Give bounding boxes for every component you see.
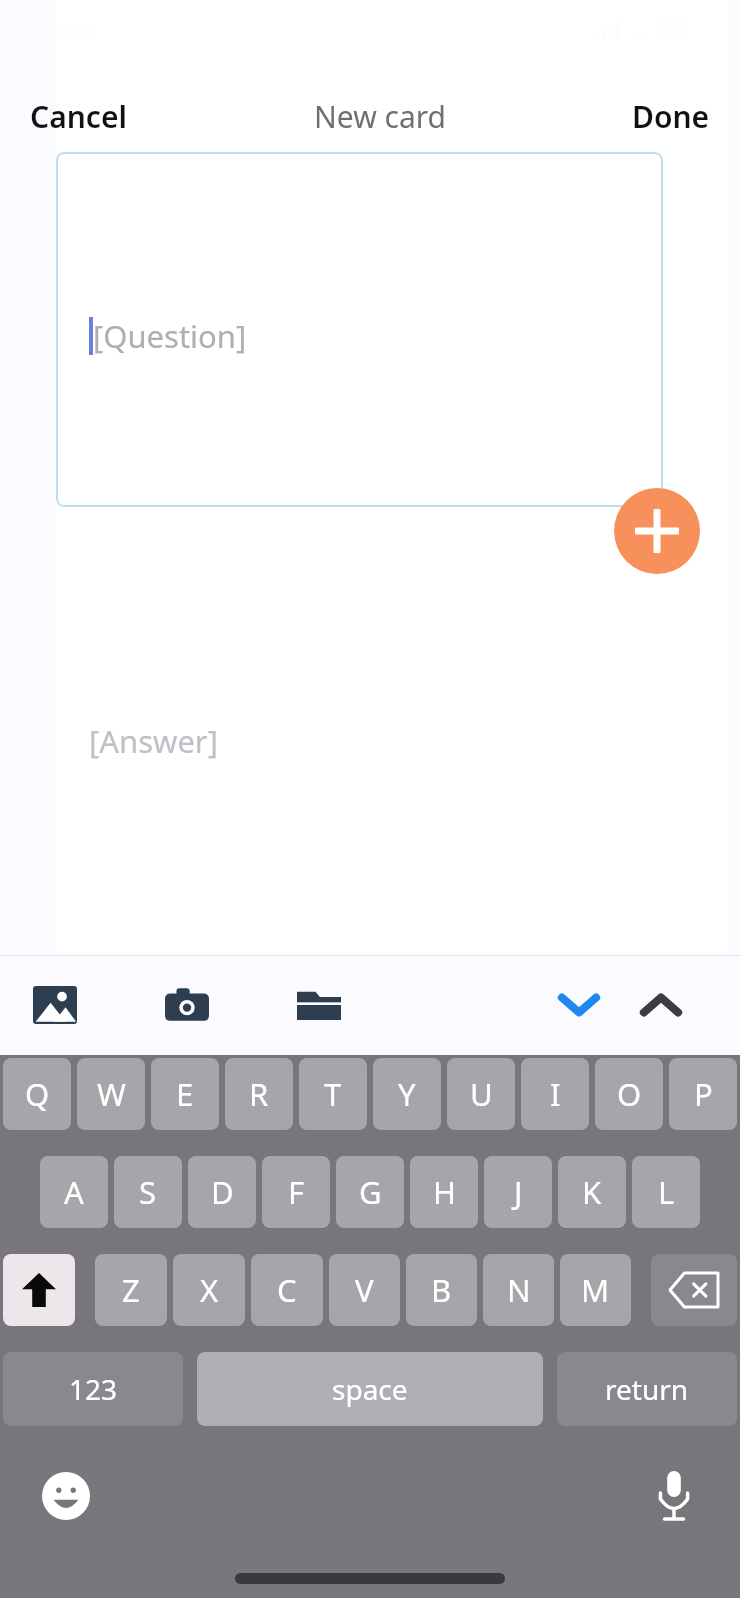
staticText: G [359, 1171, 382, 1213]
button[interactable]: 123 [3, 1352, 183, 1426]
staticText: return [605, 1370, 689, 1408]
button[interactable]: D [188, 1156, 256, 1228]
button[interactable]: Browse files [290, 976, 348, 1034]
button[interactable]: G [336, 1156, 404, 1228]
staticText: D [211, 1171, 234, 1213]
staticText: [Question] [93, 315, 247, 357]
button[interactable]: V [329, 1254, 400, 1326]
button[interactable]: Backspace [651, 1254, 737, 1326]
staticText: C [277, 1269, 297, 1311]
staticText: K [582, 1171, 602, 1213]
button[interactable]: space [197, 1352, 543, 1426]
button[interactable]: Voice input [646, 1468, 702, 1524]
staticText: J [514, 1171, 523, 1213]
button[interactable]: B [406, 1254, 477, 1326]
button[interactable]: L [632, 1156, 700, 1228]
staticText: Q [25, 1073, 50, 1115]
staticText: 123 [69, 1370, 118, 1408]
button[interactable]: Emoji [38, 1468, 94, 1524]
staticText: H [433, 1171, 456, 1213]
button[interactable]: T [299, 1058, 367, 1130]
button[interactable]: [Question] [56, 152, 663, 507]
button[interactable]: Add [614, 488, 700, 574]
button[interactable]: return [557, 1352, 737, 1426]
button[interactable]: Z [95, 1254, 167, 1326]
staticText: V [355, 1269, 374, 1311]
button[interactable]: A [40, 1156, 108, 1228]
button[interactable]: U [447, 1058, 515, 1130]
button[interactable]: S [114, 1156, 182, 1228]
staticText: N [507, 1269, 531, 1311]
staticText: S [139, 1171, 157, 1213]
button[interactable]: H [410, 1156, 478, 1228]
staticText: Y [398, 1073, 416, 1115]
button[interactable]: W [77, 1058, 145, 1130]
staticText: M [581, 1269, 610, 1311]
button[interactable]: Insert image [26, 976, 84, 1034]
button[interactable]: Done [618, 88, 724, 145]
button[interactable]: C [251, 1254, 323, 1326]
staticText: B [431, 1269, 452, 1311]
staticText: L [658, 1171, 675, 1213]
staticText: R [249, 1073, 269, 1115]
staticText: A [64, 1171, 84, 1213]
button[interactable]: X [173, 1254, 245, 1326]
button[interactable]: R [225, 1058, 293, 1130]
staticText: space [332, 1370, 408, 1408]
button[interactable]: O [595, 1058, 663, 1130]
staticText: Z [122, 1269, 140, 1311]
button[interactable]: I [521, 1058, 589, 1130]
staticText: [Answer] [89, 720, 218, 762]
staticText: T [324, 1073, 342, 1115]
button[interactable]: F [262, 1156, 330, 1228]
staticText: New card [314, 96, 446, 137]
staticText: E [176, 1073, 194, 1115]
staticText: F [288, 1171, 305, 1213]
button[interactable]: P [669, 1058, 737, 1130]
button[interactable]: Previous field [632, 976, 690, 1034]
staticText: O [617, 1073, 642, 1115]
staticText: I [550, 1073, 561, 1115]
button[interactable]: N [483, 1254, 554, 1326]
button[interactable]: Cancel [16, 88, 141, 145]
button[interactable]: Shift [3, 1254, 75, 1326]
button[interactable]: E [151, 1058, 219, 1130]
staticText: Cancel [30, 96, 127, 137]
button[interactable]: Y [373, 1058, 441, 1130]
button[interactable]: J [484, 1156, 552, 1228]
button[interactable]: K [558, 1156, 626, 1228]
staticText: U [470, 1073, 493, 1115]
staticText: W [97, 1073, 126, 1115]
button[interactable]: Q [3, 1058, 71, 1130]
staticText: Done [632, 96, 710, 137]
button[interactable]: Take photo [158, 976, 216, 1034]
button[interactable]: [Answer] [56, 640, 663, 920]
button[interactable]: M [560, 1254, 631, 1326]
staticText: P [694, 1073, 713, 1115]
button[interactable]: Next field [550, 976, 608, 1034]
staticText: X [200, 1269, 219, 1311]
